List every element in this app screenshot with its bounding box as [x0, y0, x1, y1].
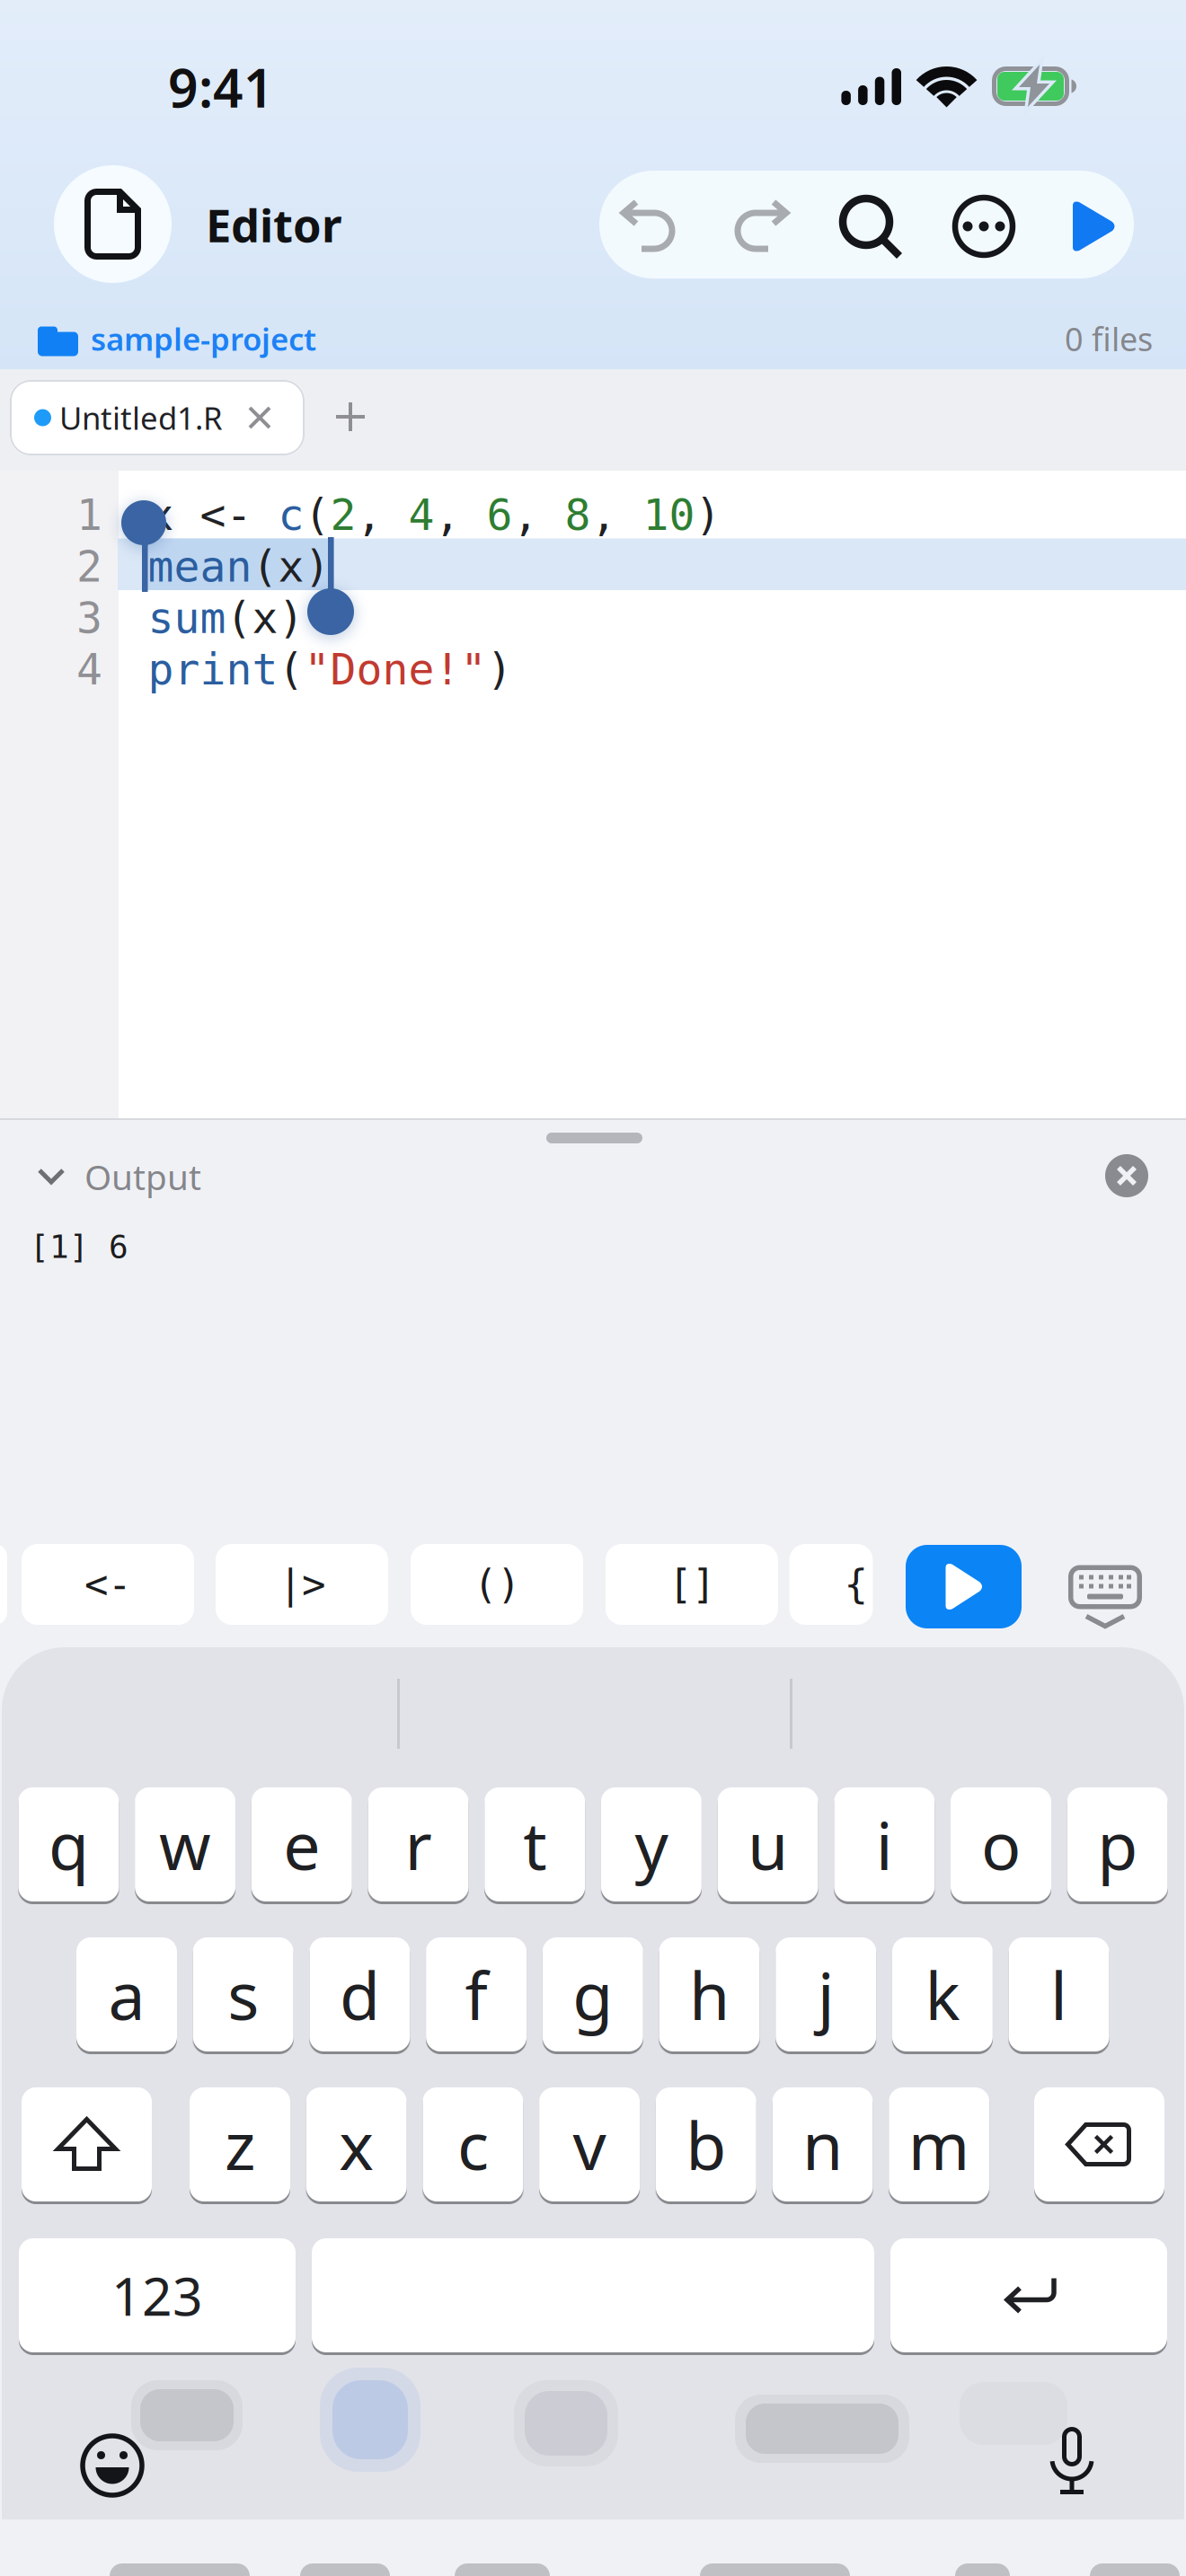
button[interactable]: u: [718, 1787, 818, 1901]
button[interactable]: t: [484, 1787, 585, 1901]
button[interactable]: <-: [22, 1544, 194, 1625]
staticText: c: [278, 491, 304, 540]
staticText: (: [304, 491, 330, 540]
staticText: "Done!": [304, 645, 487, 694]
staticText: n: [802, 2101, 843, 2188]
button[interactable]: Shift: [22, 2087, 152, 2201]
button[interactable]: k: [892, 1937, 993, 2051]
button[interactable]: l: [1009, 1937, 1109, 2051]
staticText: x: [148, 491, 200, 540]
staticText: sample-project: [91, 318, 316, 359]
button[interactable]: Run code: [906, 1545, 1022, 1628]
button[interactable]: f: [426, 1937, 527, 2051]
button[interactable]: x: [306, 2087, 407, 2201]
staticText: 6: [487, 491, 513, 540]
button[interactable]: n: [772, 2087, 873, 2201]
staticText: o: [981, 1801, 1021, 1888]
staticText: 123: [111, 2260, 203, 2330]
staticText: q: [48, 1801, 89, 1888]
staticText: i: [876, 1801, 893, 1888]
staticText: Editor: [206, 194, 342, 255]
staticText: l: [1050, 1951, 1067, 2038]
button[interactable]: y: [601, 1787, 702, 1901]
staticText: b: [686, 2101, 726, 2188]
staticText: y: [635, 1801, 668, 1888]
button[interactable]: a: [76, 1937, 177, 2051]
staticText: 10: [643, 491, 695, 540]
staticText: h: [689, 1951, 730, 2038]
staticText: z: [225, 2101, 255, 2188]
button[interactable]: r: [368, 1787, 469, 1901]
staticText: <-: [84, 1562, 131, 1607]
staticText: s: [227, 1951, 259, 2038]
button[interactable]: z: [190, 2087, 290, 2201]
button[interactable]: Return: [890, 2238, 1167, 2352]
button[interactable]: j: [776, 1937, 876, 2051]
button[interactable]: {: [801, 1544, 885, 1625]
button[interactable]: Dismiss keyboard: [1067, 1555, 1144, 1619]
button[interactable]: Close output: [1105, 1154, 1148, 1197]
button[interactable]: sample-project: [38, 319, 316, 358]
button[interactable]: More: [951, 194, 1016, 259]
staticText: d: [340, 1951, 380, 2038]
staticText: 9:41: [168, 52, 274, 122]
staticText: |>: [279, 1562, 325, 1607]
staticText: p: [1097, 1801, 1138, 1888]
button[interactable]: g: [543, 1937, 643, 2051]
staticText: (): [474, 1562, 520, 1607]
staticText: 2: [76, 542, 102, 591]
button[interactable]: Redo: [729, 198, 792, 256]
staticText: ): [487, 645, 513, 694]
staticText: mean: [148, 542, 252, 591]
button[interactable]: d: [309, 1937, 410, 2051]
button[interactable]: New tab: [336, 402, 365, 431]
button[interactable]: (): [411, 1544, 583, 1625]
button[interactable]: Emoji: [79, 2432, 146, 2499]
button[interactable]: s: [193, 1937, 294, 2051]
button[interactable]: Space: [312, 2238, 874, 2352]
staticText: (x): [252, 542, 330, 591]
staticText: Output: [84, 1154, 201, 1200]
staticText: m: [908, 2101, 970, 2188]
button[interactable]: Output: [40, 1154, 201, 1199]
button[interactable]: v: [539, 2087, 640, 2201]
staticText: e: [283, 1801, 320, 1888]
button[interactable]: Search: [836, 193, 902, 260]
staticText: ,: [513, 491, 565, 540]
button[interactable]: Run: [1070, 200, 1117, 252]
button[interactable]: Delete: [1034, 2087, 1164, 2201]
staticText: v: [573, 2101, 606, 2188]
staticText: 0 files: [1065, 317, 1153, 360]
button[interactable]: Dictate: [1049, 2427, 1095, 2497]
staticText: 3: [76, 594, 102, 643]
staticText: 8: [565, 491, 591, 540]
staticText: print: [148, 645, 278, 694]
button[interactable]: m: [889, 2087, 989, 2201]
button[interactable]: b: [656, 2087, 756, 2201]
staticText: u: [748, 1801, 788, 1888]
button[interactable]: i: [834, 1787, 935, 1901]
button[interactable]: o: [951, 1787, 1051, 1901]
button[interactable]: File: [54, 165, 172, 283]
button[interactable]: Undo: [618, 198, 681, 256]
staticText: {: [844, 1562, 867, 1607]
staticText: j: [817, 1951, 834, 2038]
button[interactable]: []: [606, 1544, 778, 1625]
button[interactable]: 123: [19, 2238, 296, 2352]
button[interactable]: e: [251, 1787, 352, 1901]
button[interactable]: c: [423, 2087, 523, 2201]
button[interactable]: w: [135, 1787, 235, 1901]
button[interactable]: h: [659, 1937, 760, 2051]
button[interactable]: |>: [216, 1544, 388, 1625]
button[interactable]: q: [18, 1787, 119, 1901]
staticText: g: [573, 1951, 613, 2038]
button[interactable]: Untitled1.R: [10, 380, 305, 455]
staticText: w: [159, 1801, 211, 1888]
staticText: []: [668, 1562, 715, 1607]
staticText: <-: [200, 491, 278, 540]
button[interactable]: p: [1067, 1787, 1168, 1901]
staticText: (: [278, 645, 304, 694]
staticText: 1: [76, 491, 102, 540]
staticText: ,: [434, 491, 487, 540]
staticText: t: [523, 1801, 546, 1888]
